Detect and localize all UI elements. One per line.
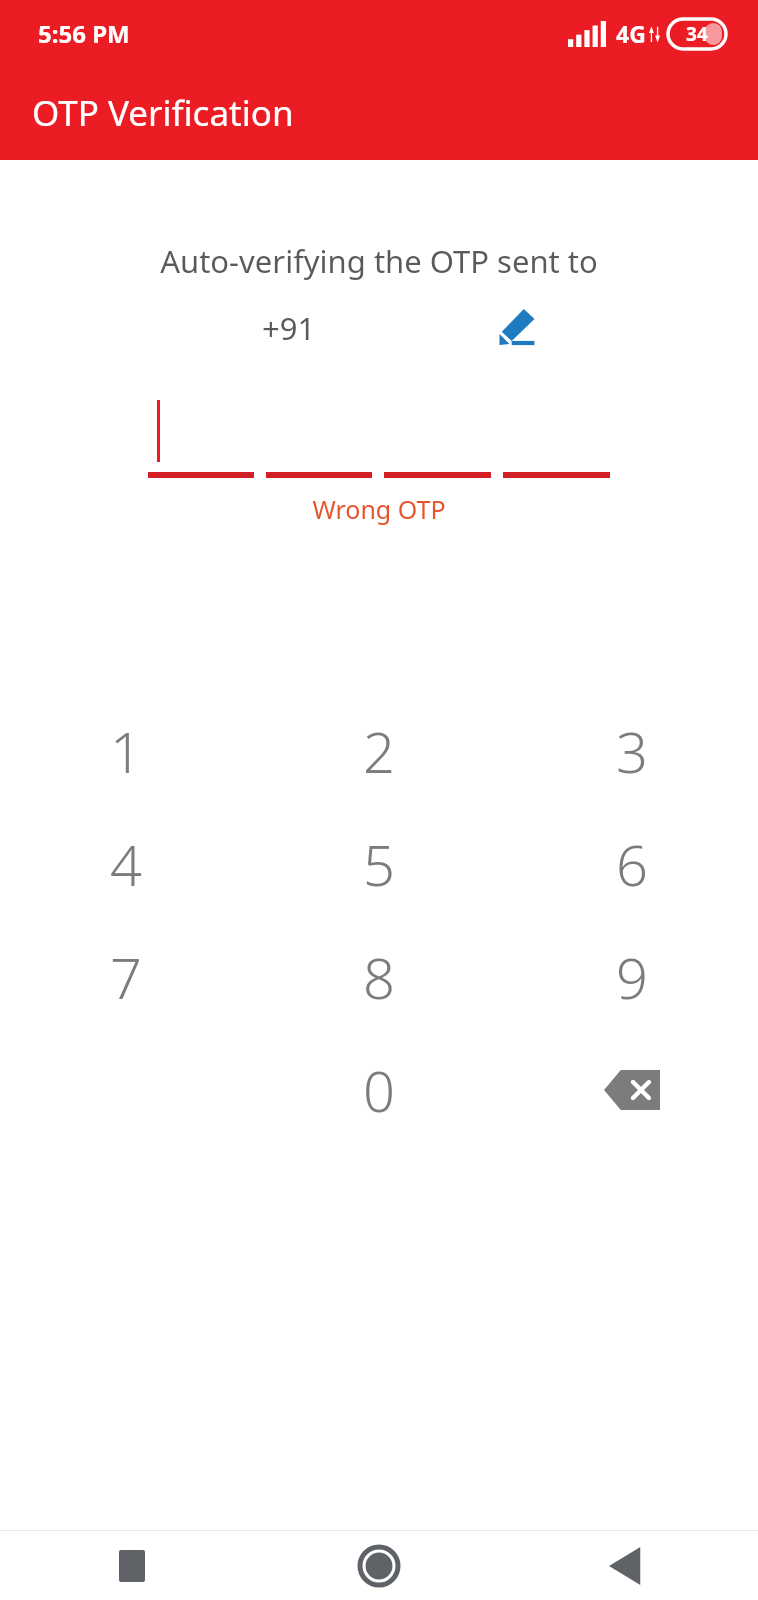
button[interactable]: 3 — [505, 694, 758, 807]
staticText: 1 — [110, 713, 142, 789]
staticText: 3 — [616, 713, 648, 789]
button[interactable]: 7 — [0, 920, 252, 1033]
staticText: 9 — [616, 939, 648, 1015]
staticText: 5 — [363, 826, 395, 902]
button[interactable]: Backspace — [505, 1033, 758, 1146]
staticText: 6 — [616, 826, 648, 902]
button[interactable]: 0 — [252, 1033, 505, 1146]
staticText: 7 — [110, 939, 142, 1015]
staticText: 4G — [616, 18, 646, 49]
button[interactable]: 8 — [252, 920, 505, 1033]
staticText: 0 — [363, 1052, 395, 1128]
button[interactable] — [503, 388, 610, 478]
button[interactable]: Back — [582, 1531, 670, 1600]
button[interactable] — [384, 388, 491, 478]
button[interactable]: Recents — [88, 1531, 176, 1600]
staticText: +91 — [262, 307, 316, 349]
button[interactable]: Edit phone number — [486, 304, 548, 352]
button[interactable] — [266, 388, 372, 478]
button[interactable]: Home — [335, 1531, 423, 1600]
button[interactable]: 6 — [505, 807, 758, 920]
button[interactable]: 9 — [505, 920, 758, 1033]
staticText: 2 — [363, 713, 395, 789]
button[interactable]: 2 — [252, 694, 505, 807]
staticText: 34 — [686, 21, 708, 47]
staticText: 8 — [363, 939, 395, 1015]
button[interactable]: 1 — [0, 694, 252, 807]
button[interactable]: 4 — [0, 807, 252, 920]
staticText: OTP Verification — [32, 89, 294, 137]
staticText: 4 — [110, 826, 142, 902]
button[interactable] — [148, 388, 254, 478]
staticText: Auto-verifying the OTP sent to — [0, 240, 758, 282]
staticText: 5:56 PM — [38, 17, 130, 50]
button[interactable]: 5 — [252, 807, 505, 920]
staticText: Wrong OTP — [0, 492, 758, 526]
